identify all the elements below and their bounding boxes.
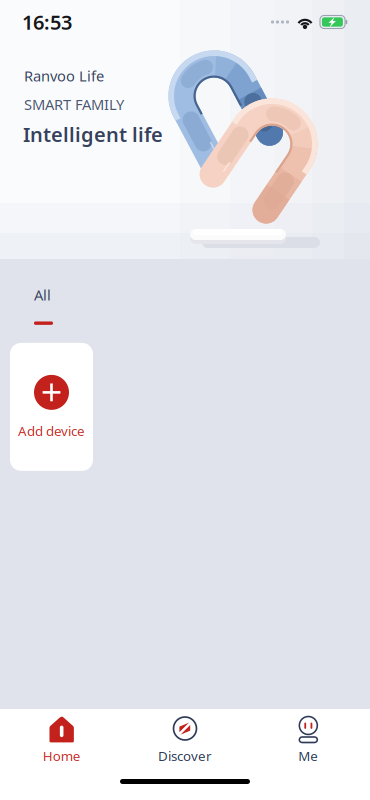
button[interactable]: All (0, 259, 77, 327)
staticText: All (34, 285, 51, 304)
button[interactable]: Me (247, 709, 370, 765)
staticText: Add device (18, 422, 85, 440)
staticText: Discover (158, 747, 212, 765)
button[interactable]: Home (0, 709, 123, 765)
staticText: Me (298, 747, 318, 765)
staticText: Intelligent life (23, 121, 163, 148)
button[interactable]: Discover (123, 709, 247, 765)
staticText: SMART FAMILY (24, 94, 124, 114)
staticText: 16:53 (22, 9, 72, 35)
staticText: Ranvoo Life (24, 66, 104, 85)
button[interactable]: Add device (10, 343, 93, 471)
staticText: Home (43, 747, 81, 765)
